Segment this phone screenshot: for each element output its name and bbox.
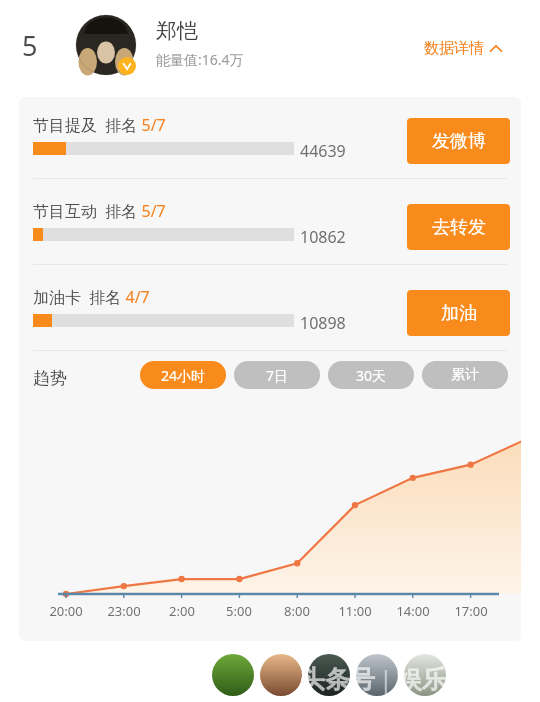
staticText: 17:00 — [445, 602, 497, 620]
staticText: 趋势 — [33, 368, 67, 389]
staticText: | — [379, 662, 393, 696]
staticText: 20:00 — [40, 602, 92, 620]
staticText: 7日 — [266, 366, 289, 385]
staticText: 23:00 — [98, 602, 150, 620]
staticText: 娱乐饭堂 — [397, 664, 497, 695]
staticText: 10898 — [300, 312, 346, 334]
staticText: 10862 — [300, 226, 346, 248]
staticText: 节目互动 排名 5/7 — [33, 200, 166, 222]
staticText: 5:00 — [213, 602, 265, 620]
staticText: 累计 — [451, 366, 479, 384]
button[interactable]: 去转发 — [407, 204, 510, 250]
button[interactable]: 7日 — [234, 361, 320, 389]
button[interactable]: Avatar 5 — [404, 654, 446, 696]
staticText: 24小时 — [161, 366, 206, 385]
button[interactable]: 30天 — [328, 361, 414, 389]
staticText: 发微博 — [432, 130, 486, 153]
button[interactable]: 累计 — [422, 361, 508, 389]
button[interactable]: Avatar 3 — [308, 654, 350, 696]
staticText: 加油卡 排名 4/7 — [33, 286, 150, 308]
staticText: 5 — [22, 27, 38, 64]
button[interactable]: 24小时 — [140, 361, 226, 389]
staticText: 14:00 — [387, 602, 439, 620]
staticText: 头条号 — [300, 664, 375, 695]
button[interactable]: Avatar 2 — [260, 654, 302, 696]
staticText: 节目提及 排名 5/7 — [33, 114, 166, 136]
staticText: 去转发 — [432, 216, 486, 239]
staticText: 数据详情 — [424, 39, 484, 58]
button[interactable]: 加油 — [407, 290, 510, 336]
staticText: 30天 — [356, 366, 387, 385]
button[interactable]: 数据详情 — [420, 36, 506, 61]
staticText: 8:00 — [271, 602, 323, 620]
staticText: 加油 — [441, 302, 477, 325]
button[interactable]: Avatar 4 — [356, 654, 398, 696]
button[interactable]: 发微博 — [407, 118, 510, 164]
button[interactable]: Avatar 1 — [212, 654, 254, 696]
staticText: 能量值:16.4万 — [156, 50, 244, 69]
staticText: 11:00 — [329, 602, 381, 620]
staticText: 郑恺 — [156, 18, 198, 44]
staticText: 2:00 — [156, 602, 208, 620]
staticText: 44639 — [300, 140, 346, 162]
